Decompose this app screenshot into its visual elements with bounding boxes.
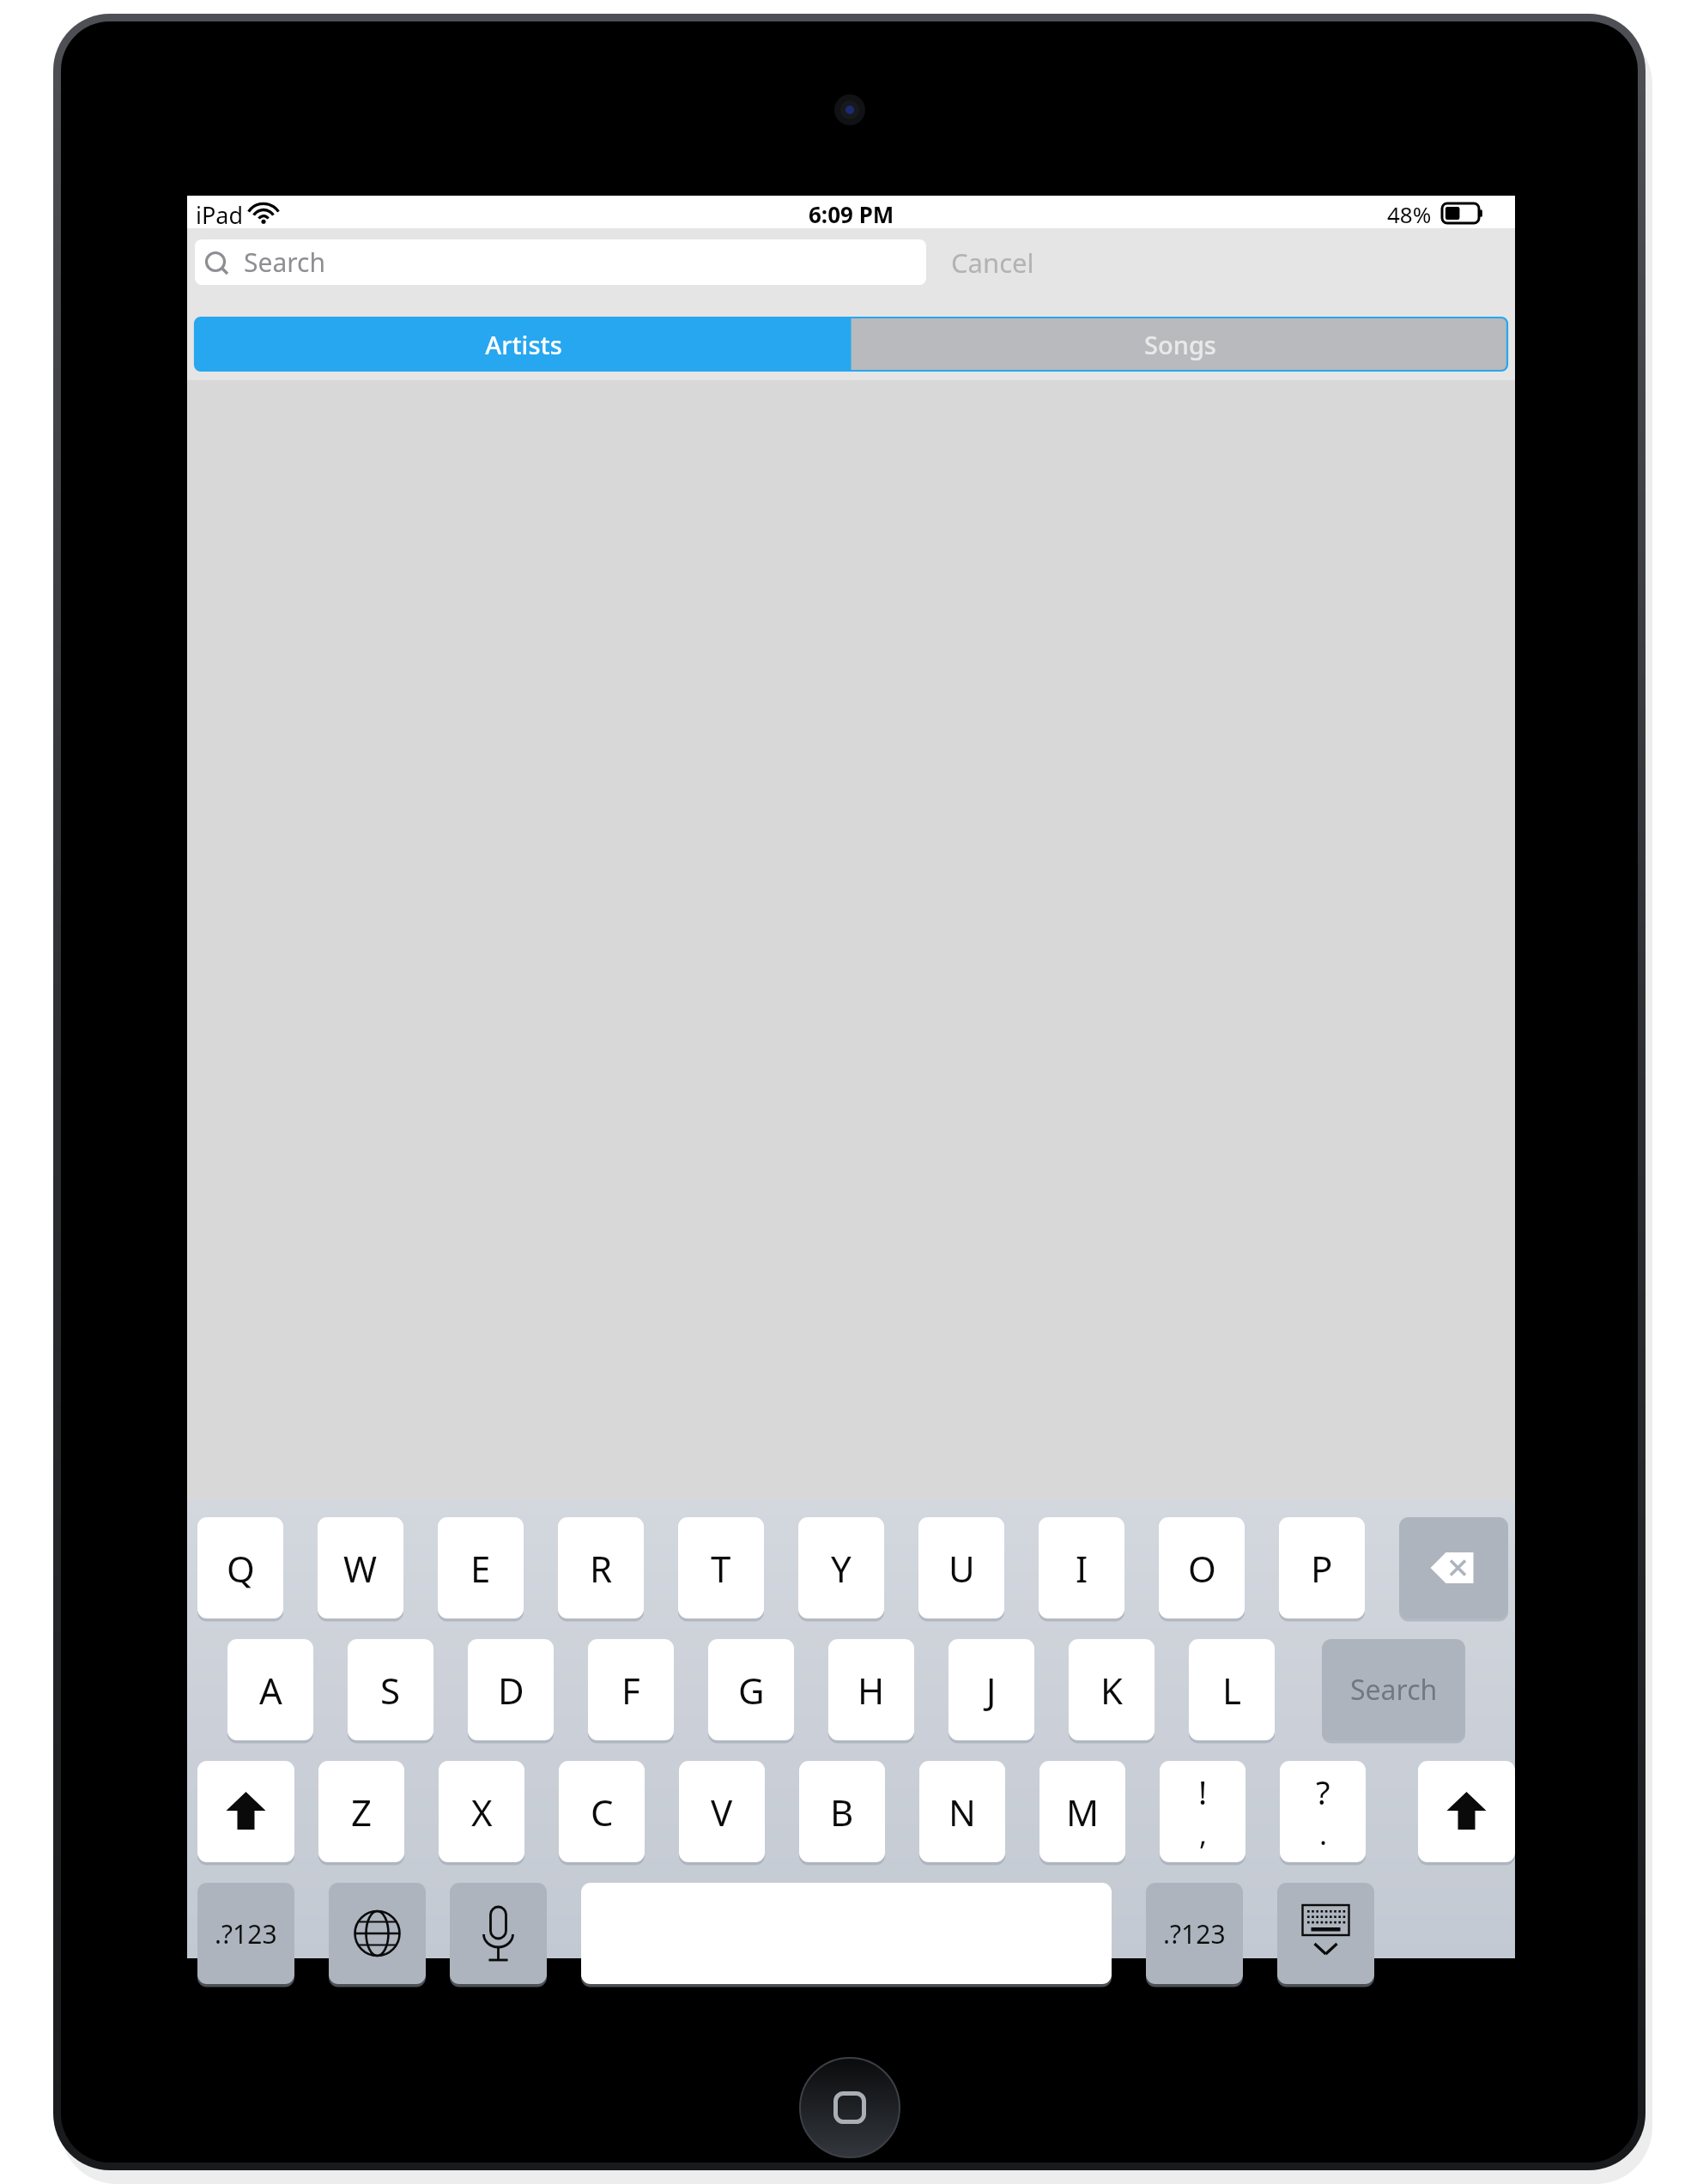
- staticText: I: [1076, 1544, 1088, 1593]
- staticText: P: [1311, 1544, 1333, 1593]
- button[interactable]: Hide keyboard: [1277, 1883, 1374, 1984]
- button[interactable]: L: [1189, 1639, 1275, 1740]
- staticText: 6:09 PM: [809, 199, 894, 227]
- button[interactable]: Shift: [197, 1761, 294, 1862]
- button[interactable]: Search: [1322, 1639, 1465, 1740]
- staticText: Z: [351, 1788, 373, 1836]
- staticText: Y: [831, 1544, 852, 1593]
- staticText: .?123: [215, 1916, 277, 1951]
- button[interactable]: Dictation: [450, 1883, 547, 1984]
- button[interactable]: Artists: [195, 318, 852, 371]
- staticText: 48%: [1387, 199, 1432, 227]
- staticText: G: [738, 1666, 765, 1715]
- button[interactable]: B: [799, 1761, 885, 1862]
- staticText: D: [498, 1666, 524, 1715]
- staticText: Search: [1350, 1671, 1438, 1709]
- button[interactable]: X: [439, 1761, 524, 1862]
- staticText: K: [1100, 1666, 1123, 1715]
- button[interactable]: M: [1039, 1761, 1125, 1862]
- button[interactable]: Search: [195, 239, 926, 285]
- staticText: iPad: [196, 199, 244, 227]
- button[interactable]: !: [1160, 1761, 1245, 1862]
- button[interactable]: Shift: [1418, 1761, 1515, 1862]
- staticText: Songs: [1144, 328, 1216, 361]
- button[interactable]: S: [348, 1639, 433, 1740]
- staticText: R: [590, 1544, 613, 1593]
- button[interactable]: F: [588, 1639, 674, 1740]
- staticText: H: [858, 1666, 885, 1715]
- button[interactable]: W: [318, 1517, 403, 1618]
- button[interactable]: G: [708, 1639, 794, 1740]
- staticText: F: [621, 1666, 640, 1715]
- staticText: C: [591, 1788, 614, 1836]
- button[interactable]: ?: [1280, 1761, 1366, 1862]
- staticText: Cancel: [951, 245, 1034, 281]
- staticText: O: [1188, 1544, 1216, 1593]
- button[interactable]: N: [919, 1761, 1005, 1862]
- button[interactable]: Delete: [1399, 1517, 1508, 1618]
- button[interactable]: .?123: [1146, 1883, 1243, 1984]
- staticText: ,: [1199, 1814, 1208, 1854]
- button[interactable]: J: [949, 1639, 1034, 1740]
- button[interactable]: .?123: [197, 1883, 294, 1984]
- staticText: B: [830, 1788, 854, 1836]
- button[interactable]: I: [1039, 1517, 1124, 1618]
- button[interactable]: R: [558, 1517, 644, 1618]
- button[interactable]: D: [468, 1639, 554, 1740]
- staticText: L: [1222, 1666, 1242, 1715]
- button[interactable]: Space: [581, 1883, 1112, 1984]
- staticText: V: [711, 1788, 733, 1836]
- button[interactable]: U: [918, 1517, 1004, 1618]
- staticText: M: [1066, 1788, 1100, 1836]
- staticText: .: [1319, 1814, 1328, 1854]
- staticText: S: [380, 1666, 401, 1715]
- staticText: Search: [244, 245, 325, 280]
- button[interactable]: E: [438, 1517, 524, 1618]
- button[interactable]: C: [559, 1761, 645, 1862]
- staticText: !: [1198, 1770, 1208, 1814]
- staticText: T: [711, 1544, 731, 1593]
- button[interactable]: K: [1069, 1639, 1155, 1740]
- button[interactable]: Cancel: [941, 239, 1095, 285]
- staticText: A: [259, 1666, 282, 1715]
- staticText: J: [986, 1666, 997, 1715]
- staticText: .?123: [1163, 1916, 1226, 1951]
- button[interactable]: Z: [318, 1761, 404, 1862]
- button[interactable]: T: [678, 1517, 764, 1618]
- button[interactable]: Q: [197, 1517, 283, 1618]
- button[interactable]: O: [1159, 1517, 1245, 1618]
- button[interactable]: V: [679, 1761, 765, 1862]
- button[interactable]: Y: [798, 1517, 884, 1618]
- staticText: Q: [227, 1544, 255, 1593]
- staticText: U: [949, 1544, 975, 1593]
- staticText: Artists: [485, 328, 562, 361]
- button[interactable]: Songs: [852, 318, 1508, 371]
- button[interactable]: H: [828, 1639, 914, 1740]
- button[interactable]: A: [227, 1639, 313, 1740]
- button[interactable]: Next keyboard: [329, 1883, 426, 1984]
- staticText: X: [471, 1788, 493, 1836]
- staticText: W: [343, 1544, 378, 1593]
- staticText: ?: [1316, 1770, 1330, 1814]
- staticText: N: [949, 1788, 976, 1836]
- staticText: E: [470, 1544, 491, 1593]
- button[interactable]: P: [1279, 1517, 1365, 1618]
